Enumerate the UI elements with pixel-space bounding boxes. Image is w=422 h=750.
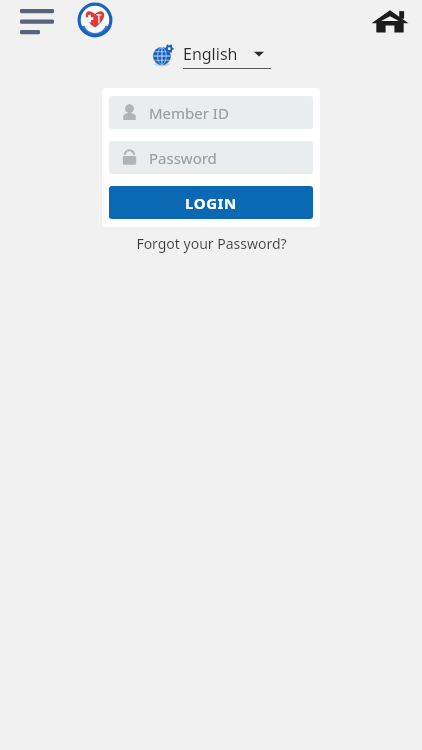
button[interactable]: App logo — [76, 1, 114, 39]
staticText: LOGIN — [185, 193, 237, 213]
button[interactable]: Member ID — [109, 96, 313, 129]
button[interactable]: Language globe — [149, 43, 273, 69]
button[interactable]: Home — [368, 2, 412, 40]
other: Language globe — [151, 43, 177, 69]
button[interactable]: Forgot your Password? — [130, 232, 293, 255]
staticText: Password — [149, 148, 217, 168]
button[interactable]: LOGIN — [109, 186, 313, 219]
button[interactable]: Password — [109, 141, 313, 174]
button[interactable]: Menu — [14, 2, 64, 40]
staticText: Forgot your Password? — [136, 234, 287, 253]
staticText: English — [183, 43, 238, 65]
staticText: Member ID — [149, 103, 229, 123]
